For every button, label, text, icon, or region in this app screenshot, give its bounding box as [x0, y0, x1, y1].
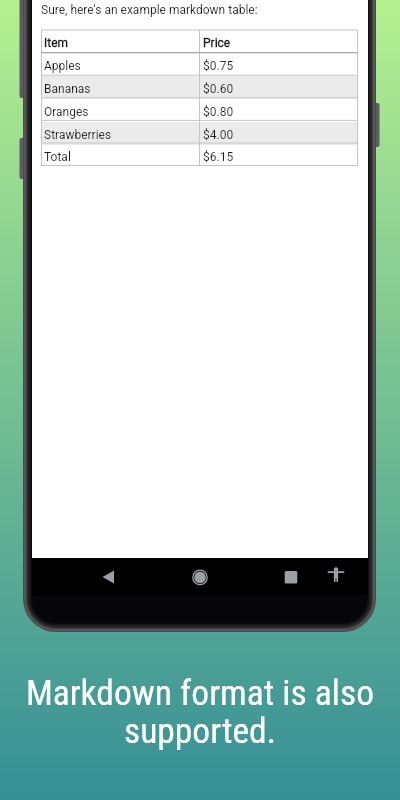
- button[interactable]: Back: [94, 563, 122, 591]
- staticText: $6.15: [203, 150, 234, 164]
- staticText: Apples: [44, 59, 81, 73]
- staticText: $0.60: [203, 82, 234, 96]
- button[interactable]: Home: [186, 563, 214, 591]
- staticText: Markdown format is also supported.: [12, 672, 388, 751]
- staticText: Price: [203, 36, 231, 50]
- staticText: $4.00: [203, 128, 234, 142]
- staticText: Item: [44, 36, 69, 50]
- staticText: Strawberries: [44, 128, 112, 142]
- button[interactable]: Recent apps: [277, 563, 305, 591]
- staticText: Bananas: [44, 82, 91, 96]
- button[interactable]: Accessibility: [322, 563, 350, 591]
- staticText: Oranges: [44, 105, 89, 119]
- staticText: $0.80: [203, 105, 234, 119]
- staticText: $0.75: [203, 59, 234, 73]
- staticText: Total: [44, 150, 71, 164]
- staticText: Sure, here's an example markdown table:: [41, 3, 258, 17]
